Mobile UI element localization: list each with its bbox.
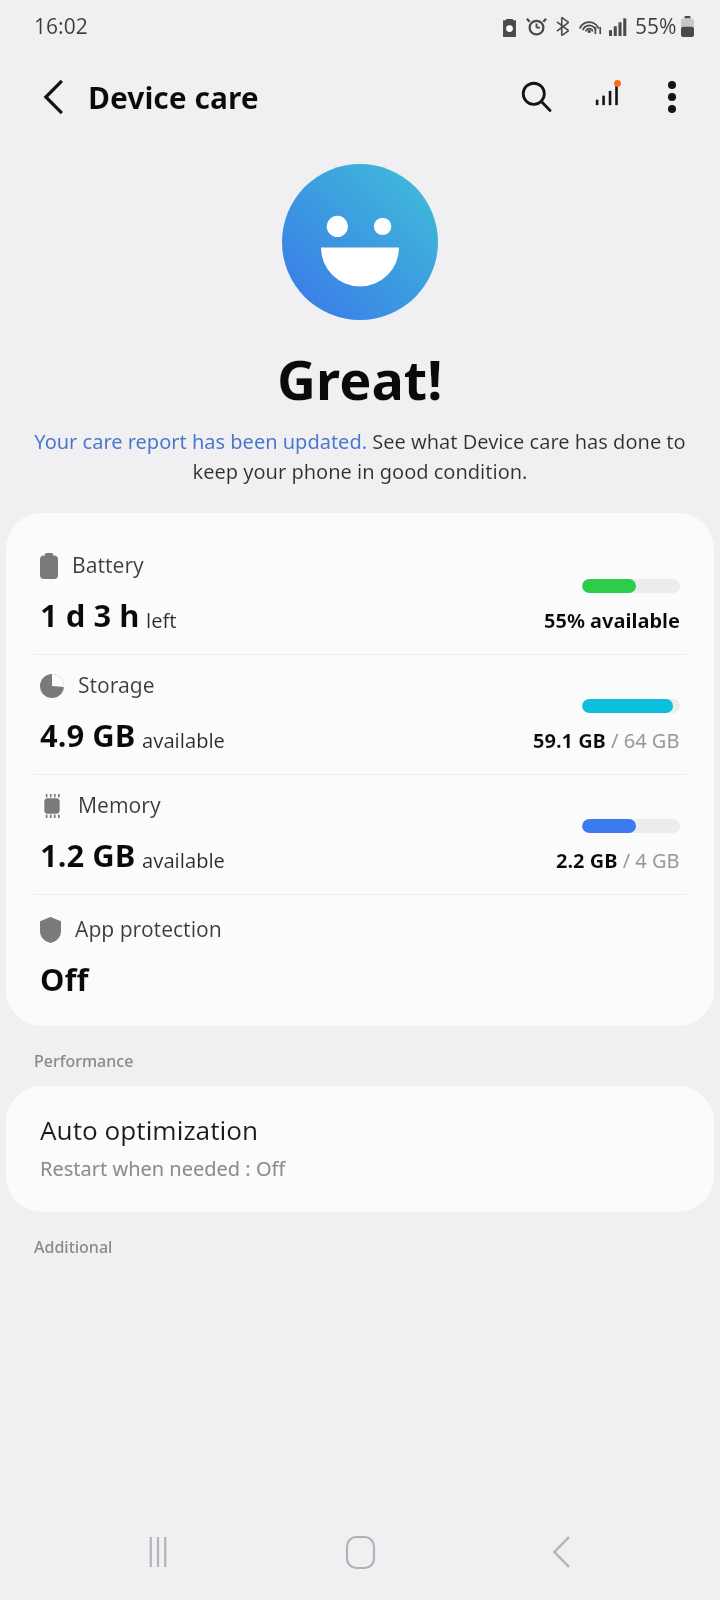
staticText: 55% available xyxy=(544,607,680,634)
staticText: Performance xyxy=(34,1050,134,1072)
staticText: 59.1 GB / 64 GB xyxy=(533,727,680,754)
staticText: Device care xyxy=(88,77,259,118)
button[interactable]: More options xyxy=(646,71,698,123)
button[interactable]: Recents xyxy=(114,1508,202,1596)
staticText: available xyxy=(142,847,225,874)
staticText: 2.2 GB / 4 GB xyxy=(556,847,680,874)
staticText: Auto optimization xyxy=(40,1112,259,1147)
staticText: left xyxy=(146,607,177,634)
staticText: Battery xyxy=(72,551,144,580)
button[interactable]: Memory xyxy=(6,775,714,894)
staticText: Great! xyxy=(277,342,443,416)
staticText: 1.2 GB xyxy=(40,834,136,876)
staticText: 55% xyxy=(635,12,677,41)
staticText: 1 d 3 h xyxy=(40,594,140,636)
button[interactable]: App protection xyxy=(6,895,714,1026)
staticText: 4.9 GB xyxy=(40,714,136,756)
staticText: available xyxy=(142,727,225,754)
staticText: Off xyxy=(40,958,89,1000)
staticText: Restart when needed : Off xyxy=(40,1155,286,1182)
staticText: App protection xyxy=(75,915,222,944)
button[interactable]: Care report xyxy=(580,69,636,125)
button[interactable]: Battery xyxy=(6,535,714,654)
button[interactable]: Storage xyxy=(6,655,714,774)
button[interactable]: Auto optimization xyxy=(6,1086,714,1212)
staticText: 16:02 xyxy=(34,12,88,41)
button[interactable]: Home xyxy=(316,1508,404,1596)
button[interactable]: Search xyxy=(508,69,564,125)
staticText: Storage xyxy=(78,671,155,700)
staticText: Your care report has been updated. See w… xyxy=(32,428,688,485)
staticText: Memory xyxy=(78,791,161,820)
button[interactable]: Back xyxy=(518,1508,606,1596)
button[interactable]: Back xyxy=(30,73,78,121)
staticText: Additional xyxy=(34,1236,113,1258)
